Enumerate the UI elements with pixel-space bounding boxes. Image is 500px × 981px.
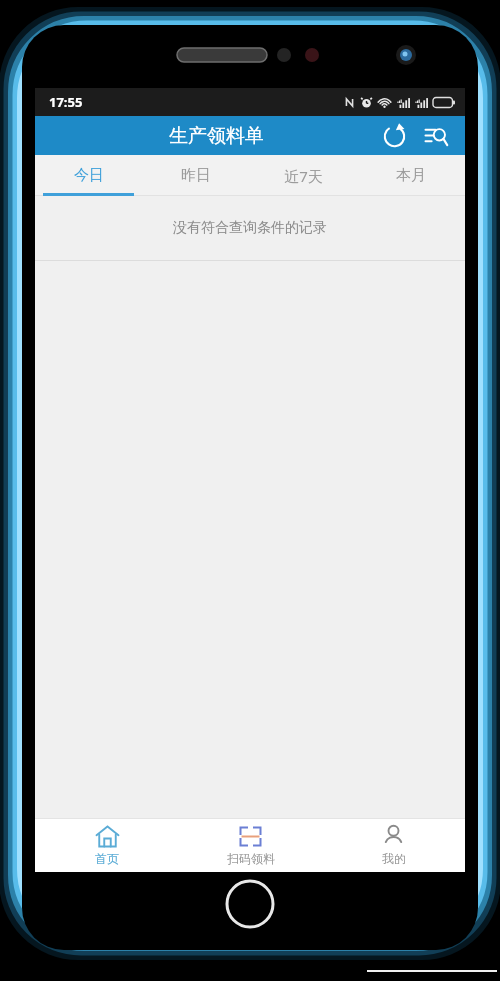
staticText: 首页 [95, 851, 119, 866]
button[interactable]: 扫码领料 [179, 818, 322, 872]
staticText: 生产领料单 [169, 124, 264, 148]
staticText: 今日 [74, 166, 104, 185]
button[interactable]: Refresh [375, 117, 413, 155]
staticText: 近7天 [284, 166, 323, 186]
staticText: 我的 [382, 851, 406, 866]
button[interactable]: 首页 [35, 818, 179, 872]
staticText: 本月 [396, 166, 426, 185]
button[interactable]: 我的 [322, 818, 465, 872]
button[interactable]: 昨日 [142, 155, 249, 196]
staticText: 昨日 [181, 166, 211, 185]
button[interactable]: 今日 [35, 155, 142, 196]
staticText: 没有符合查询条件的记录 [173, 219, 327, 237]
button[interactable]: 近7天 [249, 155, 357, 196]
staticText: 扫码领料 [227, 851, 275, 866]
button[interactable]: Search [417, 117, 455, 155]
staticText: 17:55 [49, 93, 83, 111]
button[interactable]: 本月 [357, 155, 465, 196]
